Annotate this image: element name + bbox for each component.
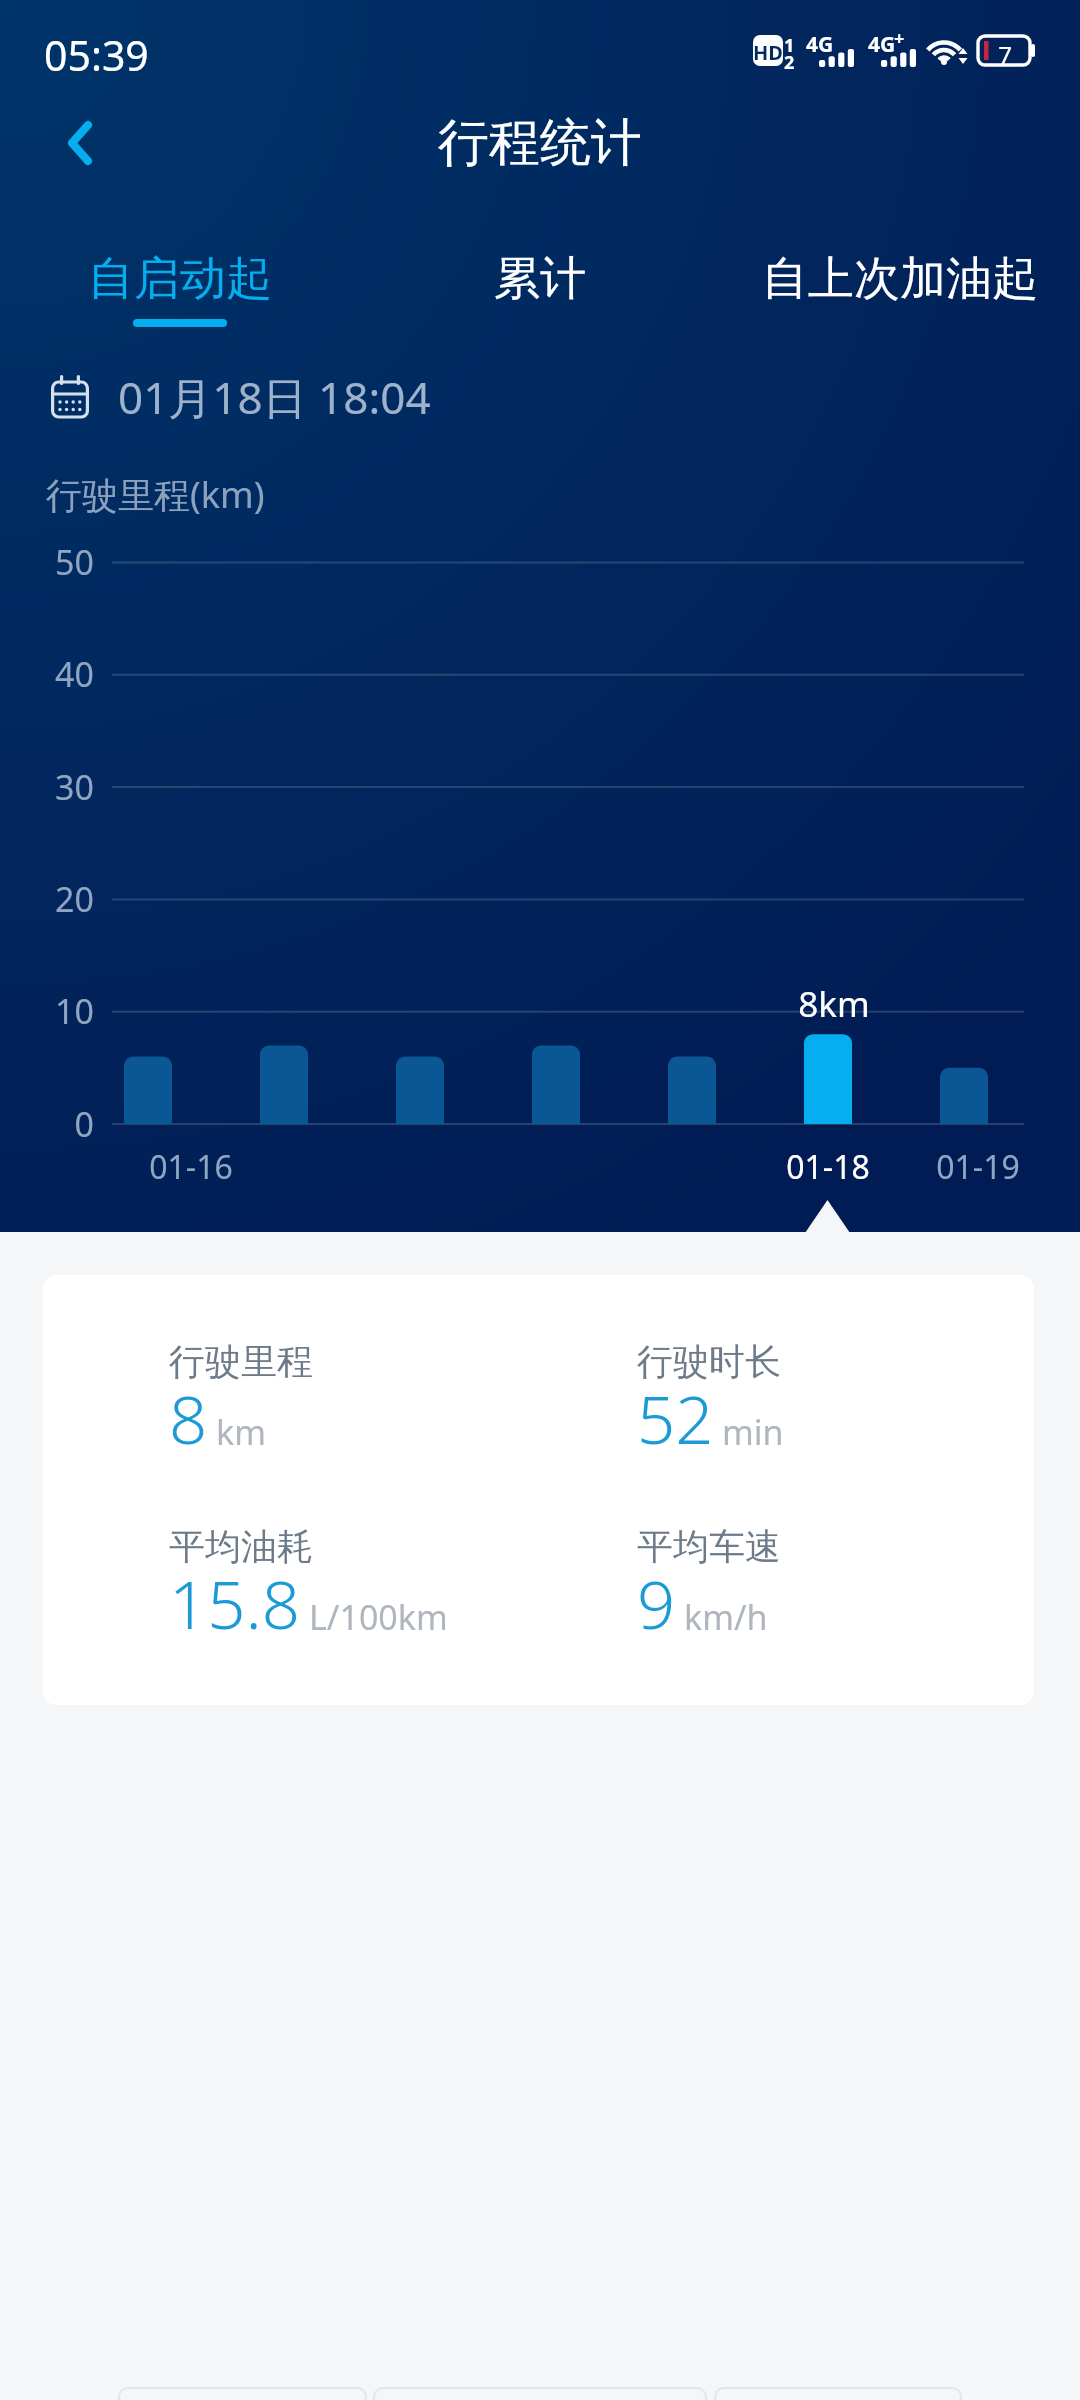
- staticText: +: [894, 26, 905, 51]
- button[interactable]: Select day column 7: [920, 560, 1008, 1180]
- button[interactable]: 自上次加油起: [720, 242, 1080, 338]
- staticText: 自上次加油起: [762, 250, 1038, 308]
- staticText: 行驶里程: [169, 1339, 313, 1384]
- staticText: 4G: [868, 30, 896, 59]
- button[interactable]: Select day column 1: [104, 560, 192, 1180]
- button[interactable]: Select day column 6: [784, 560, 872, 1180]
- button[interactable]: 自启动起: [0, 242, 360, 338]
- staticText: 01月18日 18:04: [118, 367, 431, 427]
- staticText: 7: [994, 38, 1016, 71]
- staticText: km: [216, 1409, 266, 1455]
- staticText: 0: [3, 1101, 94, 1147]
- staticText: 2: [784, 50, 795, 75]
- staticText: 40: [3, 651, 94, 697]
- staticText: 行驶里程(km): [46, 470, 265, 519]
- staticText: 01-16: [131, 1145, 251, 1189]
- staticText: 1: [784, 33, 795, 58]
- staticText: HD: [753, 39, 783, 66]
- staticText: 平均油耗: [169, 1524, 313, 1569]
- button[interactable]: Back: [20, 83, 140, 203]
- button[interactable]: 平均油耗: [169, 1524, 589, 1674]
- button[interactable]: Select day column 4: [512, 560, 600, 1180]
- button[interactable]: 累计: [360, 242, 720, 338]
- staticText: 30: [3, 764, 94, 810]
- staticText: 01-18: [768, 1145, 888, 1189]
- button[interactable]: 行驶时长: [637, 1339, 1034, 1489]
- staticText: 10: [3, 988, 94, 1034]
- staticText: 15.8: [169, 1557, 301, 1648]
- staticText: 8km: [774, 980, 894, 1028]
- staticText: 20: [3, 876, 94, 922]
- button[interactable]: Select day column 3: [376, 560, 464, 1180]
- staticText: 01-19: [918, 1145, 1038, 1189]
- button[interactable]: 行驶里程: [169, 1339, 589, 1489]
- button[interactable]: Select day column 5: [648, 560, 736, 1180]
- staticText: 累计: [494, 250, 586, 308]
- staticText: 50: [3, 539, 94, 585]
- staticText: 9: [637, 1557, 676, 1648]
- staticText: km/h: [684, 1594, 768, 1640]
- staticText: 8: [169, 1372, 208, 1463]
- staticText: 行程统计: [438, 111, 642, 175]
- staticText: L/100km: [309, 1594, 448, 1640]
- staticText: min: [722, 1409, 784, 1455]
- staticText: 平均车速: [637, 1524, 781, 1569]
- button[interactable]: Select day column 2: [240, 560, 328, 1180]
- staticText: 自启动起: [88, 250, 272, 308]
- staticText: 行驶时长: [637, 1339, 781, 1384]
- staticText: 05:39: [44, 27, 149, 83]
- staticText: 4G: [806, 30, 834, 59]
- staticText: 52: [637, 1372, 714, 1463]
- button[interactable]: 平均车速: [637, 1524, 1034, 1674]
